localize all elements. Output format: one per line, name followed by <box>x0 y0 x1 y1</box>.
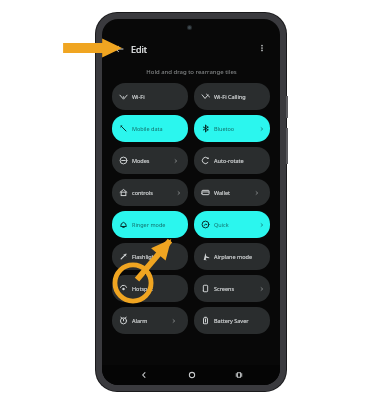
button[interactable]: Bluetooth <box>194 115 270 142</box>
button[interactable]: Hotspot <box>112 275 188 302</box>
button[interactable]: Screenshot <box>194 275 270 302</box>
staticText: Screenshot <box>214 285 236 292</box>
button[interactable]: Quick Share <box>194 211 270 238</box>
button[interactable]: Ringer mode <box>112 211 188 238</box>
staticText: Airplane mode <box>214 253 252 260</box>
staticText: Hotspot <box>132 285 153 292</box>
button[interactable]: Airplane mode <box>194 243 270 270</box>
staticText: Hold and drag to rearrange tiles <box>146 68 237 76</box>
staticText: Wi-Fi <box>132 93 145 100</box>
button[interactable]: Mobile data <box>112 115 188 142</box>
button[interactable]: Back <box>120 366 168 384</box>
staticText: Mobile data <box>132 125 163 132</box>
button[interactable]: Alarm <box>112 307 188 334</box>
button[interactable]: Modes <box>112 147 188 174</box>
button[interactable]: Back <box>110 40 127 57</box>
button[interactable]: controls <box>112 179 188 206</box>
staticText: Wallet <box>214 189 231 196</box>
staticText: Ringer mode <box>132 221 166 228</box>
button[interactable]: Auto-rotate <box>194 147 270 174</box>
button[interactable]: Battery Saver <box>194 307 270 334</box>
staticText: controls <box>132 189 153 196</box>
staticText: Flashlight <box>132 253 157 260</box>
button[interactable]: Wi-Fi Calling <box>194 83 270 110</box>
staticText: Bluetooth <box>214 125 236 132</box>
button[interactable]: More options <box>254 40 270 56</box>
staticText: Modes <box>132 157 150 164</box>
staticText: Battery Saver <box>214 317 249 324</box>
staticText: Edit <box>131 43 148 55</box>
button[interactable]: Home <box>168 366 215 384</box>
button[interactable]: Flashlight <box>112 243 188 270</box>
button[interactable]: Wallet <box>194 179 270 206</box>
staticText: Alarm <box>132 317 148 324</box>
button[interactable]: Wi-Fi <box>112 83 188 110</box>
staticText: Quick Share <box>214 221 236 228</box>
button[interactable]: Recent apps <box>215 366 262 384</box>
staticText: Wi-Fi Calling <box>214 93 246 100</box>
staticText: Auto-rotate <box>214 157 244 164</box>
